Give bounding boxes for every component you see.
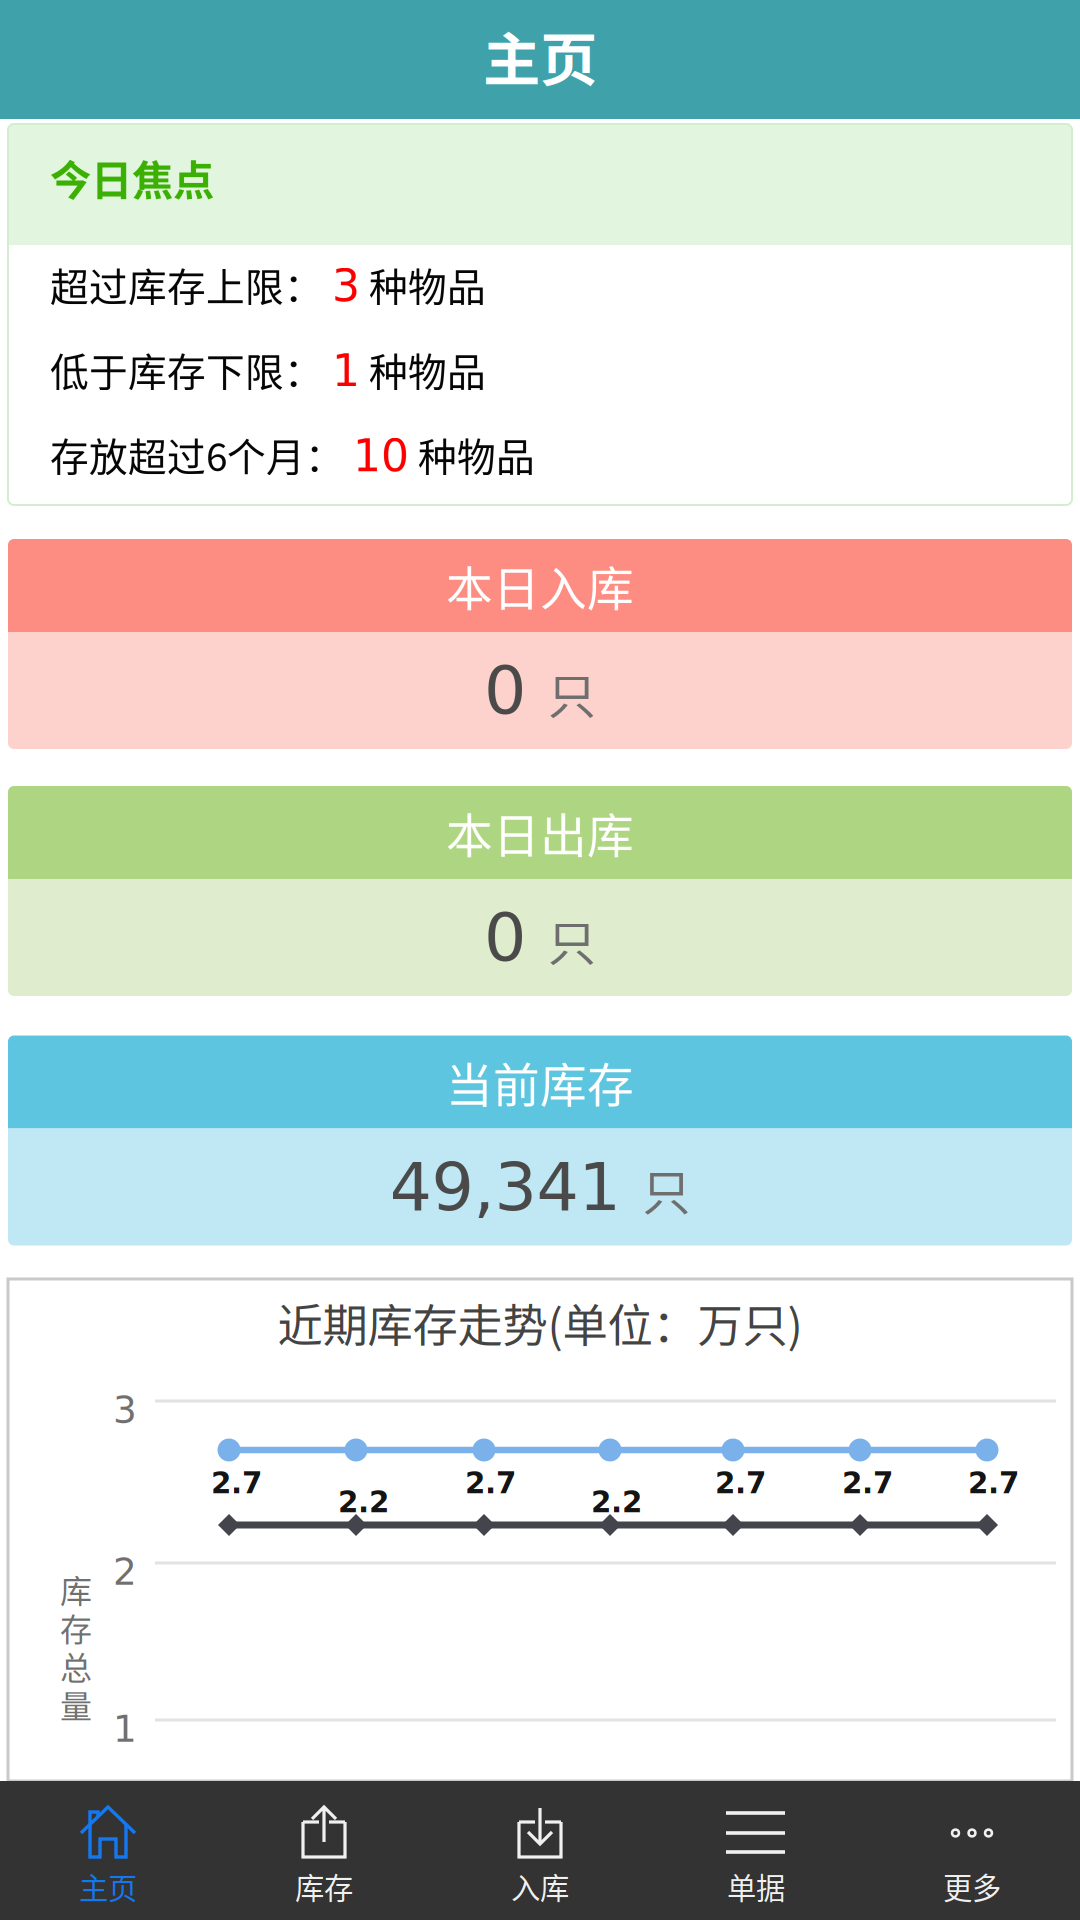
staticText: 更多 xyxy=(943,1865,1001,1907)
staticText: 超过库存上限： xyxy=(50,256,332,312)
staticText: 主页 xyxy=(79,1865,137,1907)
staticText: 2.7 xyxy=(211,1466,262,1500)
staticText: 今日焦点 xyxy=(50,148,214,207)
staticText: 只 xyxy=(548,658,596,727)
button[interactable]: 库存 xyxy=(216,1781,432,1920)
staticText: 2.2 xyxy=(591,1485,642,1519)
staticText: 库 xyxy=(60,1566,92,1612)
staticText: 存 xyxy=(60,1604,92,1651)
staticText: 0 xyxy=(484,652,526,729)
staticText: 只 xyxy=(642,1154,690,1224)
staticText: 种物品 xyxy=(360,256,486,312)
staticText: 1 xyxy=(332,345,360,397)
staticText: 低于库存下限： xyxy=(50,341,332,397)
staticText: 量 xyxy=(60,1681,92,1727)
button[interactable]: 更多 xyxy=(864,1781,1080,1920)
staticText: 2.7 xyxy=(715,1466,766,1500)
staticText: 0 xyxy=(484,899,526,976)
staticText: 当前库存 xyxy=(446,1048,634,1116)
staticText: 种物品 xyxy=(409,426,535,482)
staticText: 2.7 xyxy=(842,1466,893,1500)
staticText: 种物品 xyxy=(360,341,486,397)
staticText: 1 xyxy=(113,1707,137,1750)
staticText: 10 xyxy=(353,430,409,482)
staticText: 3 xyxy=(113,1388,137,1431)
staticText: 2.7 xyxy=(465,1466,516,1500)
staticText: 库存 xyxy=(295,1865,353,1907)
staticText: 本日出库 xyxy=(446,799,634,866)
staticText: 单据 xyxy=(727,1865,785,1907)
staticText: 存放超过6个月： xyxy=(50,426,353,482)
staticText: 2.7 xyxy=(968,1466,1019,1500)
staticText: 总 xyxy=(60,1643,92,1689)
staticText: 近期库存走势(单位：万只) xyxy=(277,1290,802,1356)
staticText: 只 xyxy=(548,905,596,974)
staticText: 入库 xyxy=(511,1865,569,1907)
staticText: 本日入库 xyxy=(446,552,634,619)
button[interactable]: 单据 xyxy=(648,1781,864,1920)
staticText: 49,341 xyxy=(389,1148,620,1226)
button[interactable]: 入库 xyxy=(432,1781,648,1920)
staticText: 2.2 xyxy=(338,1485,389,1519)
button[interactable]: 主页 xyxy=(0,1781,216,1920)
staticText: 2 xyxy=(113,1550,137,1593)
staticText: 3 xyxy=(332,260,360,312)
staticText: 主页 xyxy=(483,14,597,97)
